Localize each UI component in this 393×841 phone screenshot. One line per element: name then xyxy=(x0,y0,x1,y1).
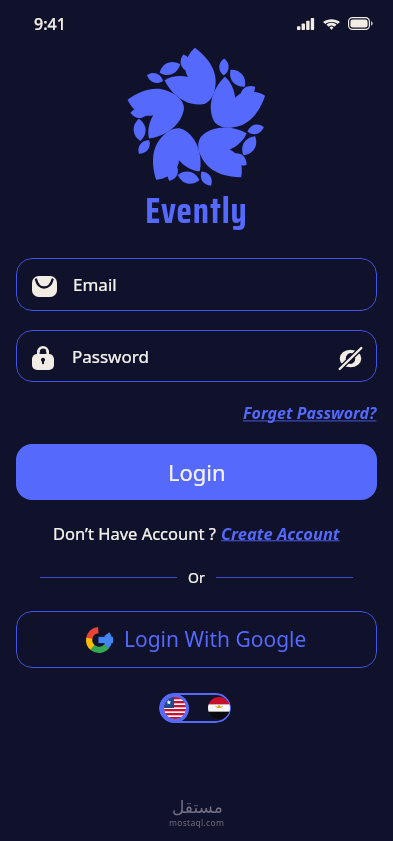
staticText: Login With Google xyxy=(124,625,307,654)
staticText: mostaql.com xyxy=(169,817,225,829)
staticText: Password xyxy=(72,345,149,368)
button[interactable]: Create Account xyxy=(221,522,340,544)
button[interactable]: Show password xyxy=(335,341,365,371)
button[interactable]: Change language xyxy=(159,693,231,723)
staticText: Or xyxy=(188,568,205,587)
button[interactable]: Forget Password? xyxy=(243,400,377,426)
button[interactable]: Email xyxy=(16,258,377,311)
button[interactable]: Login With Google xyxy=(16,611,377,668)
staticText: مستقل xyxy=(172,797,223,817)
button[interactable]: Password xyxy=(16,330,377,382)
button[interactable]: Login xyxy=(16,444,377,500)
staticText: Don’t Have Account ? xyxy=(53,522,221,544)
staticText: Login xyxy=(168,457,226,487)
staticText: 9:41 xyxy=(34,13,66,35)
staticText: Email xyxy=(73,273,117,296)
staticText: Evently xyxy=(145,182,248,239)
